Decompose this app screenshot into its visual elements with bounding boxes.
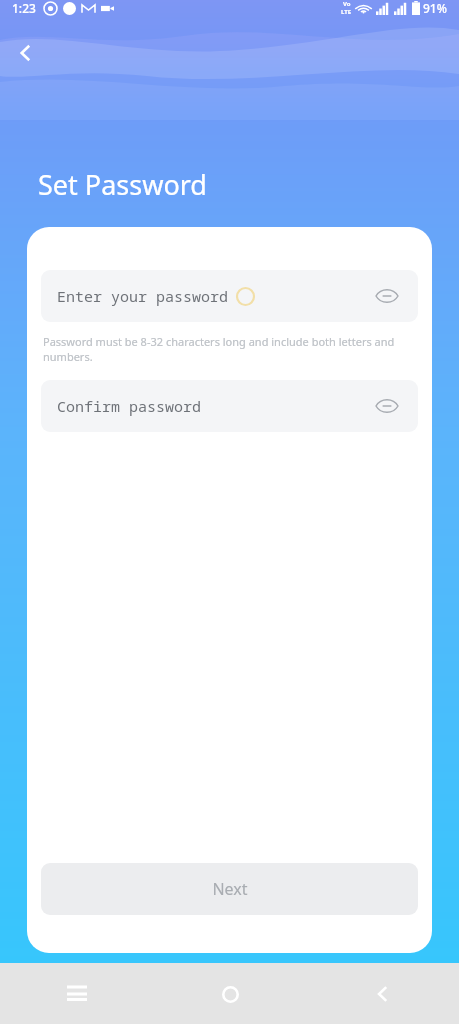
staticText: Enter your password — [57, 286, 229, 306]
button[interactable]: Toggle password visibility — [372, 391, 402, 421]
staticText: Password must be 8-32 characters long an… — [43, 334, 416, 364]
button[interactable]: Recent apps — [49, 966, 105, 1022]
staticText: LTE — [341, 8, 352, 16]
staticText: Vo — [343, 0, 351, 8]
button[interactable]: Back — [6, 33, 46, 73]
button[interactable]: Enter your password — [41, 270, 418, 322]
button[interactable]: Back — [355, 966, 411, 1022]
staticText: Set Password — [38, 166, 207, 203]
button[interactable]: Home — [202, 966, 258, 1022]
staticText: Next — [212, 878, 248, 900]
button[interactable]: Confirm password — [41, 380, 418, 432]
button[interactable]: Toggle password visibility — [372, 281, 402, 311]
staticText: 1:23 — [12, 0, 36, 16]
staticText: Confirm password — [57, 396, 202, 416]
button[interactable]: Next — [41, 863, 418, 915]
staticText: 91% — [423, 0, 447, 16]
